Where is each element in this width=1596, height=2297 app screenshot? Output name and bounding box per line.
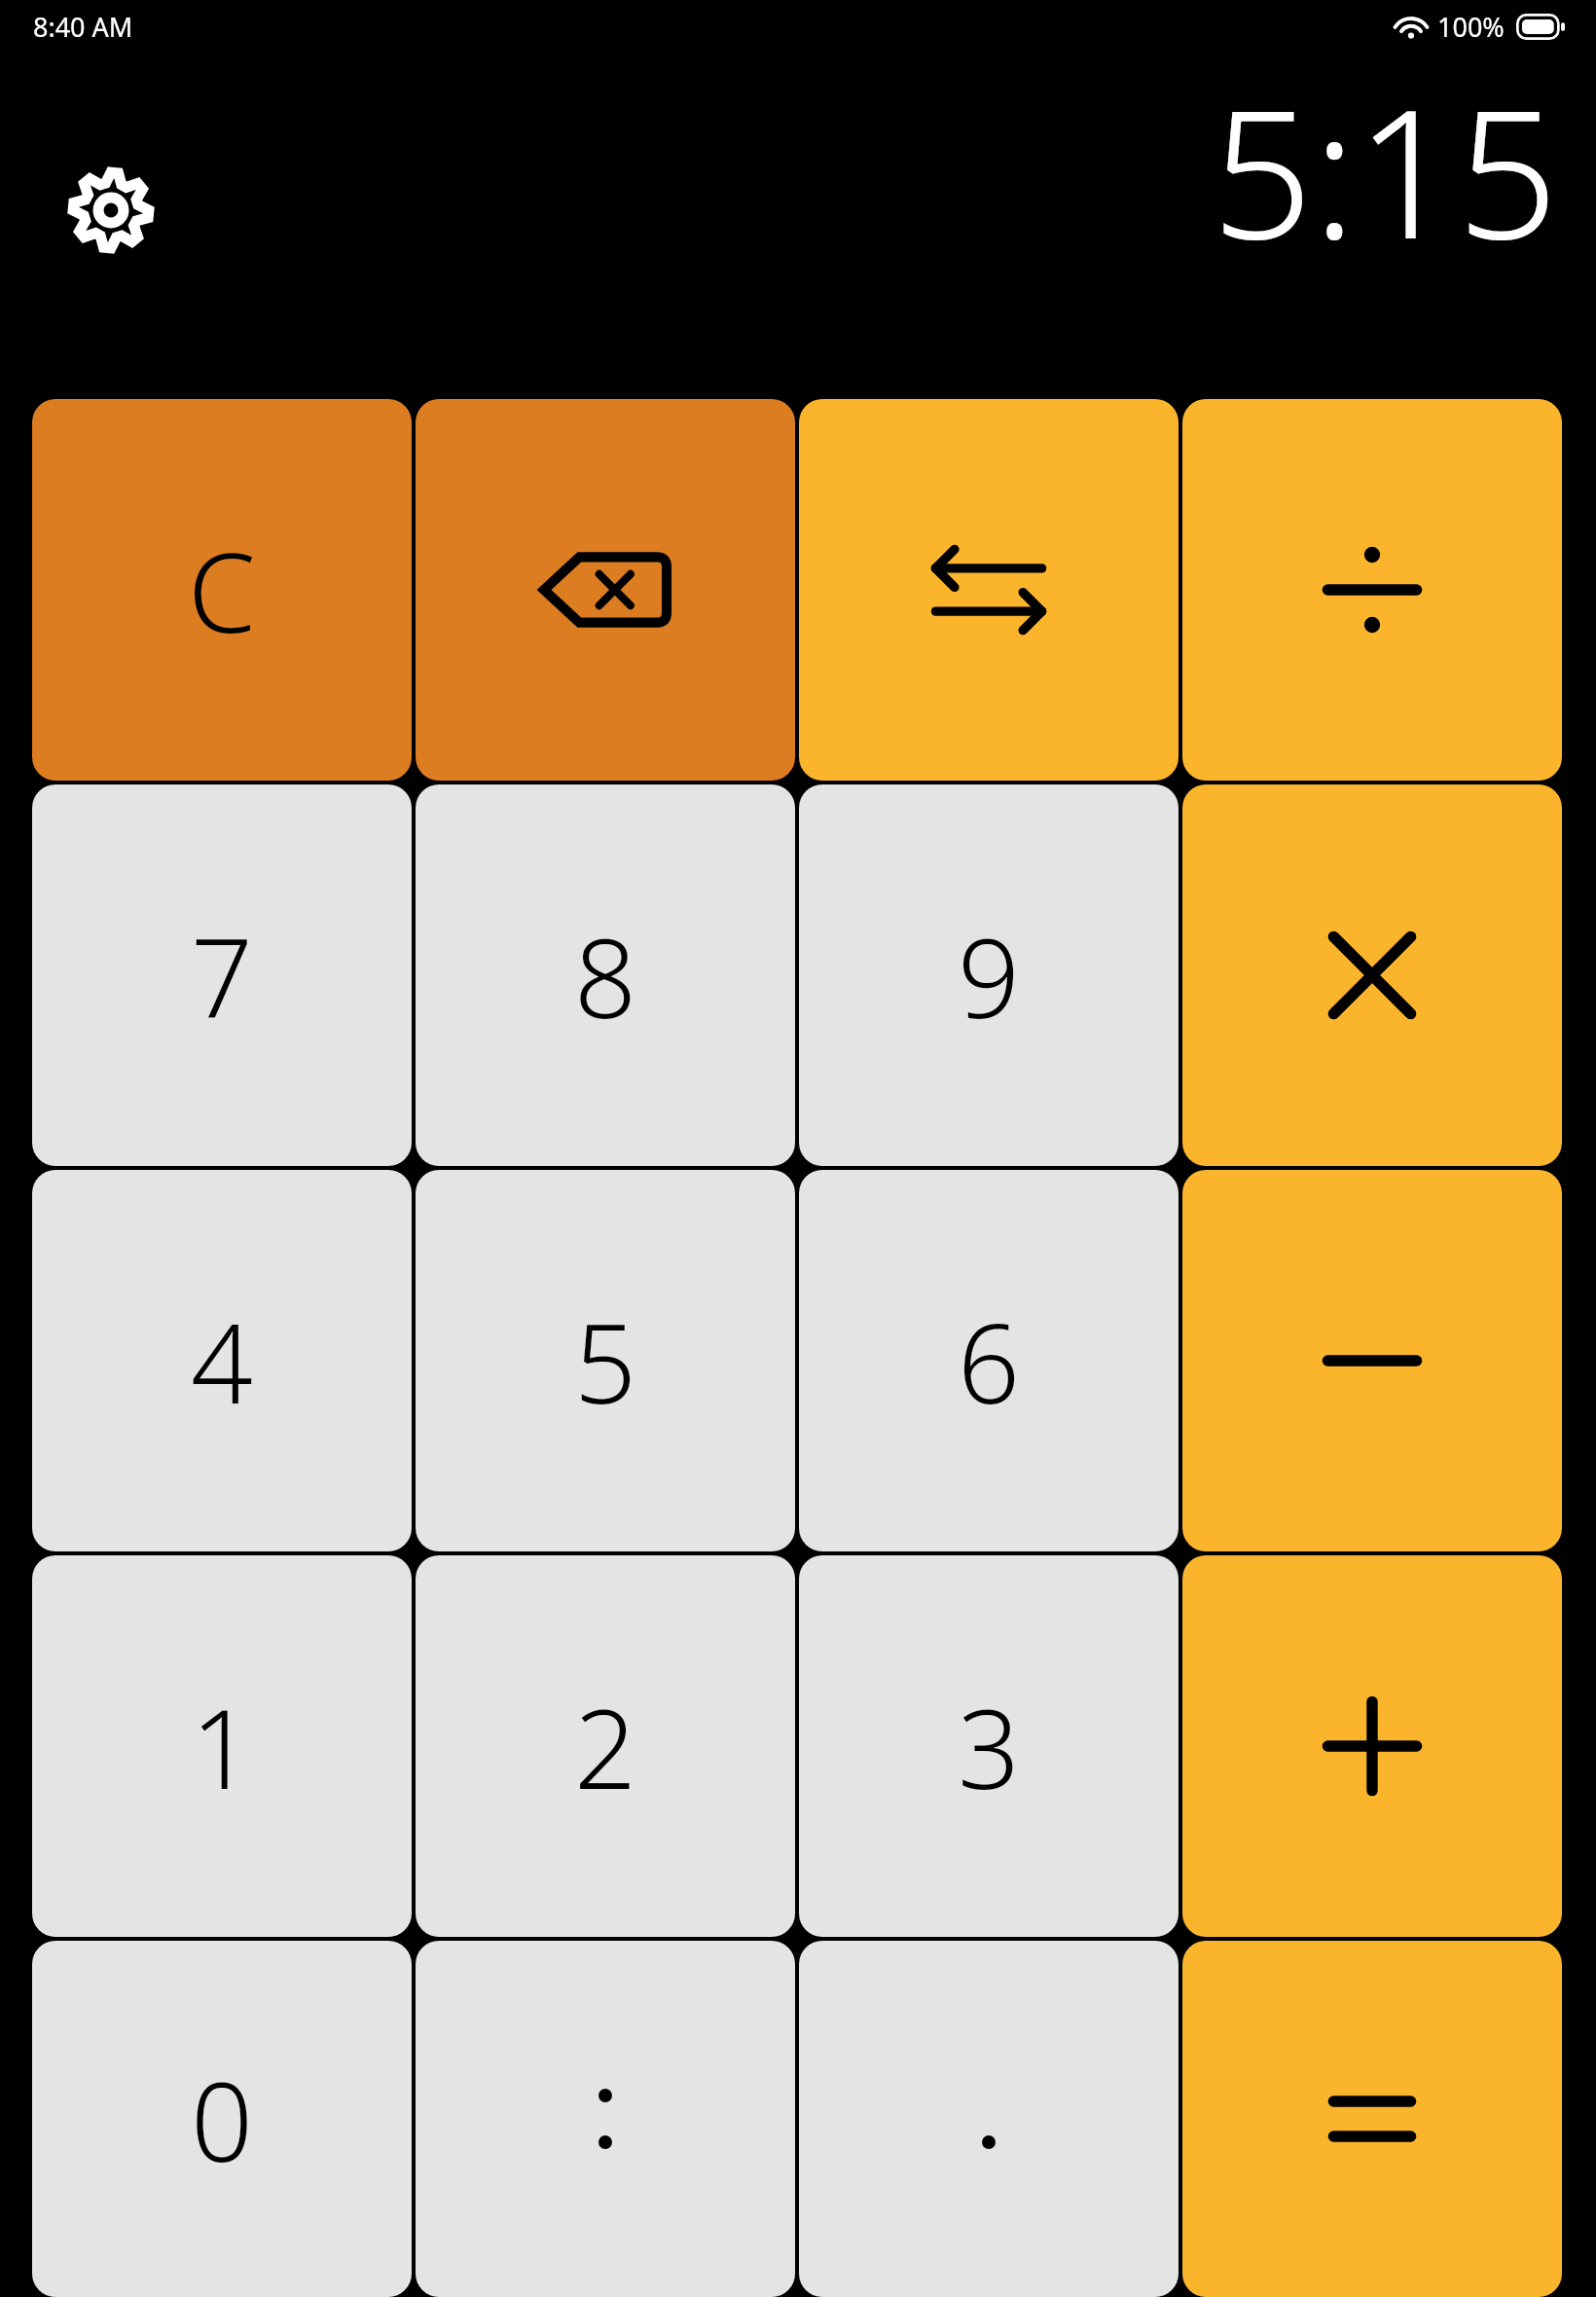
button[interactable]: Colon: [416, 1941, 795, 2297]
button[interactable]: Divide: [1182, 399, 1562, 781]
button[interactable]: Equals: [1182, 1941, 1562, 2297]
button[interactable]: 9: [799, 784, 1179, 1166]
button[interactable]: Multiply: [1182, 784, 1562, 1166]
staticText: 6: [958, 1287, 1020, 1436]
button[interactable]: 2: [416, 1555, 795, 1937]
staticText: 4: [191, 1287, 253, 1436]
button[interactable]: Plus: [1182, 1555, 1562, 1937]
button[interactable]: 8: [416, 784, 795, 1166]
staticText: 8:40 AM: [33, 9, 133, 45]
staticText: 5: [574, 1287, 636, 1436]
button[interactable]: Minus: [1182, 1170, 1562, 1551]
button[interactable]: Swap operands: [799, 399, 1179, 781]
button[interactable]: C: [32, 399, 412, 781]
button[interactable]: Backspace: [416, 399, 795, 781]
staticText: C: [188, 516, 256, 665]
staticText: 8: [574, 901, 636, 1050]
staticText: 100%: [1437, 9, 1505, 45]
button[interactable]: 4: [32, 1170, 412, 1551]
staticText: 0: [191, 2045, 253, 2194]
button[interactable]: Decimal point: [799, 1941, 1179, 2297]
staticText: 7: [191, 901, 253, 1050]
staticText: 2: [574, 1672, 636, 1821]
staticText: 3: [958, 1672, 1020, 1821]
button[interactable]: 5: [416, 1170, 795, 1551]
staticText: 5:15: [1212, 49, 1559, 290]
button[interactable]: 3: [799, 1555, 1179, 1937]
button[interactable]: Settings: [64, 164, 158, 257]
staticText: 9: [958, 901, 1020, 1050]
button[interactable]: 7: [32, 784, 412, 1166]
button[interactable]: 6: [799, 1170, 1179, 1551]
staticText: 1: [191, 1672, 253, 1821]
button[interactable]: 1: [32, 1555, 412, 1937]
button[interactable]: 0: [32, 1941, 412, 2297]
